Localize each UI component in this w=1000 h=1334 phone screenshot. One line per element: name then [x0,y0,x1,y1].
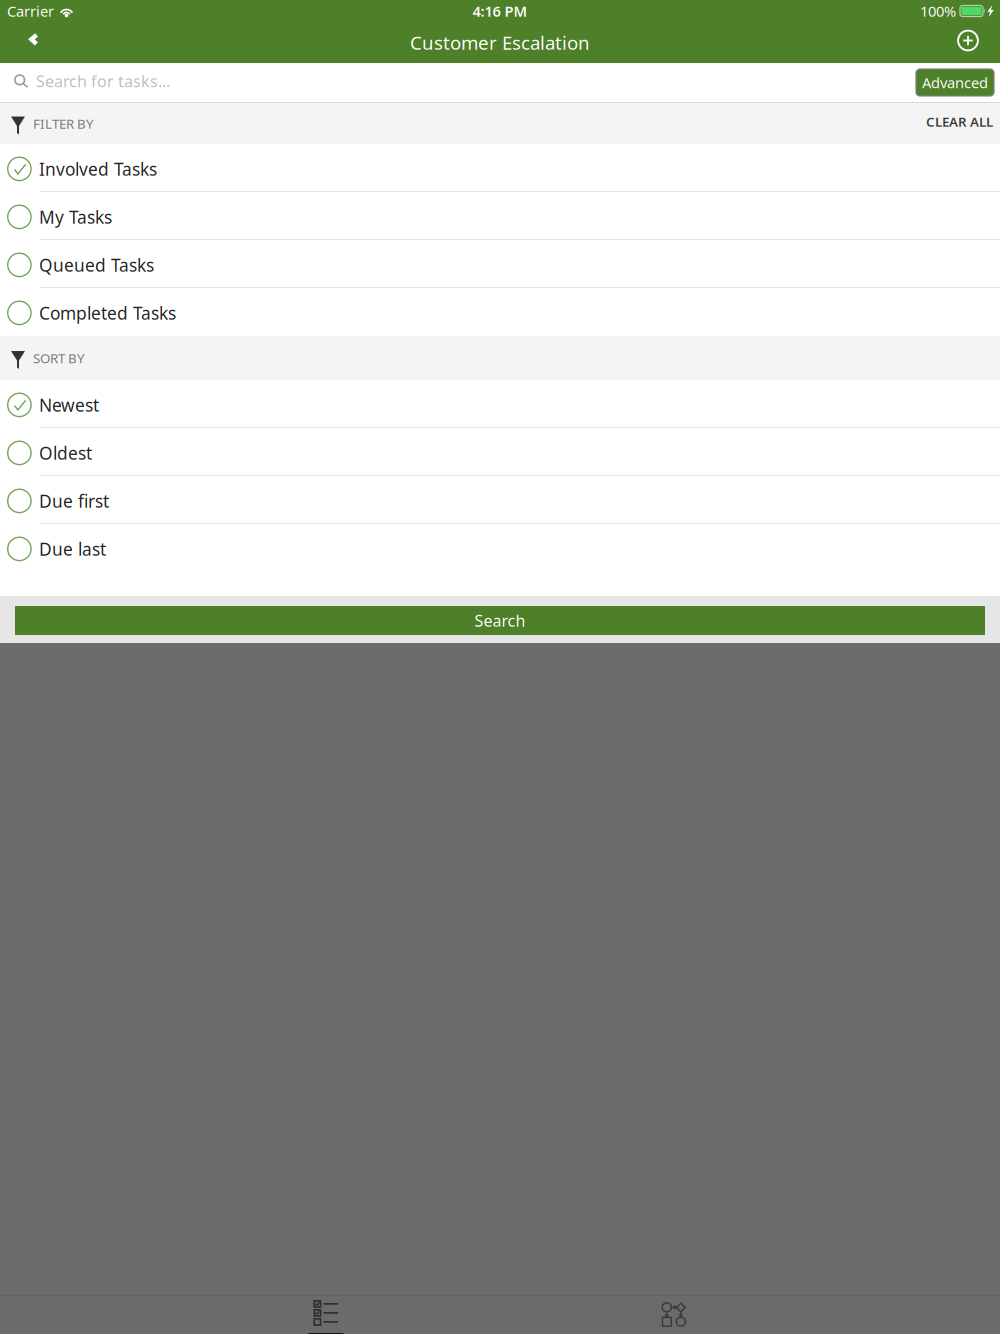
button[interactable]: Search [15,606,985,635]
button[interactable]: Add [937,22,1000,63]
button[interactable]: My Tasks [0,192,1000,240]
staticText: Advanced [922,73,988,92]
staticText: 4:16 PM [472,1,527,21]
staticText: Due first [39,489,109,512]
staticText: Due last [39,537,106,560]
staticText: Carrier [7,1,54,21]
button[interactable]: CLEAR ALL [912,106,993,141]
button[interactable]: Workflows [500,1296,848,1334]
button[interactable]: Oldest [0,428,1000,476]
staticText: Completed Tasks [39,301,176,324]
staticText: Search for tasks... [36,70,170,92]
staticText: CLEAR ALL [926,113,993,130]
staticText: Search [474,610,525,631]
staticText: SORT BY [33,349,85,367]
staticText: Newest [39,393,99,416]
staticText: 100% [920,1,956,21]
staticText: My Tasks [39,205,112,228]
button[interactable]: Queued Tasks [0,240,1000,288]
button[interactable]: Advanced [916,69,994,96]
button[interactable]: Due last [0,524,1000,572]
button[interactable]: Newest [0,380,1000,428]
button[interactable]: Back [0,22,68,63]
button[interactable]: Due first [0,476,1000,524]
staticText: Customer Escalation [410,30,590,55]
button[interactable]: Tasks [152,1296,500,1334]
staticText: FILTER BY [33,115,94,132]
button[interactable]: Completed Tasks [0,288,1000,336]
staticText: Involved Tasks [39,157,157,180]
staticText: Queued Tasks [39,253,154,276]
button[interactable]: Involved Tasks [0,144,1000,192]
staticText: Oldest [39,441,92,464]
